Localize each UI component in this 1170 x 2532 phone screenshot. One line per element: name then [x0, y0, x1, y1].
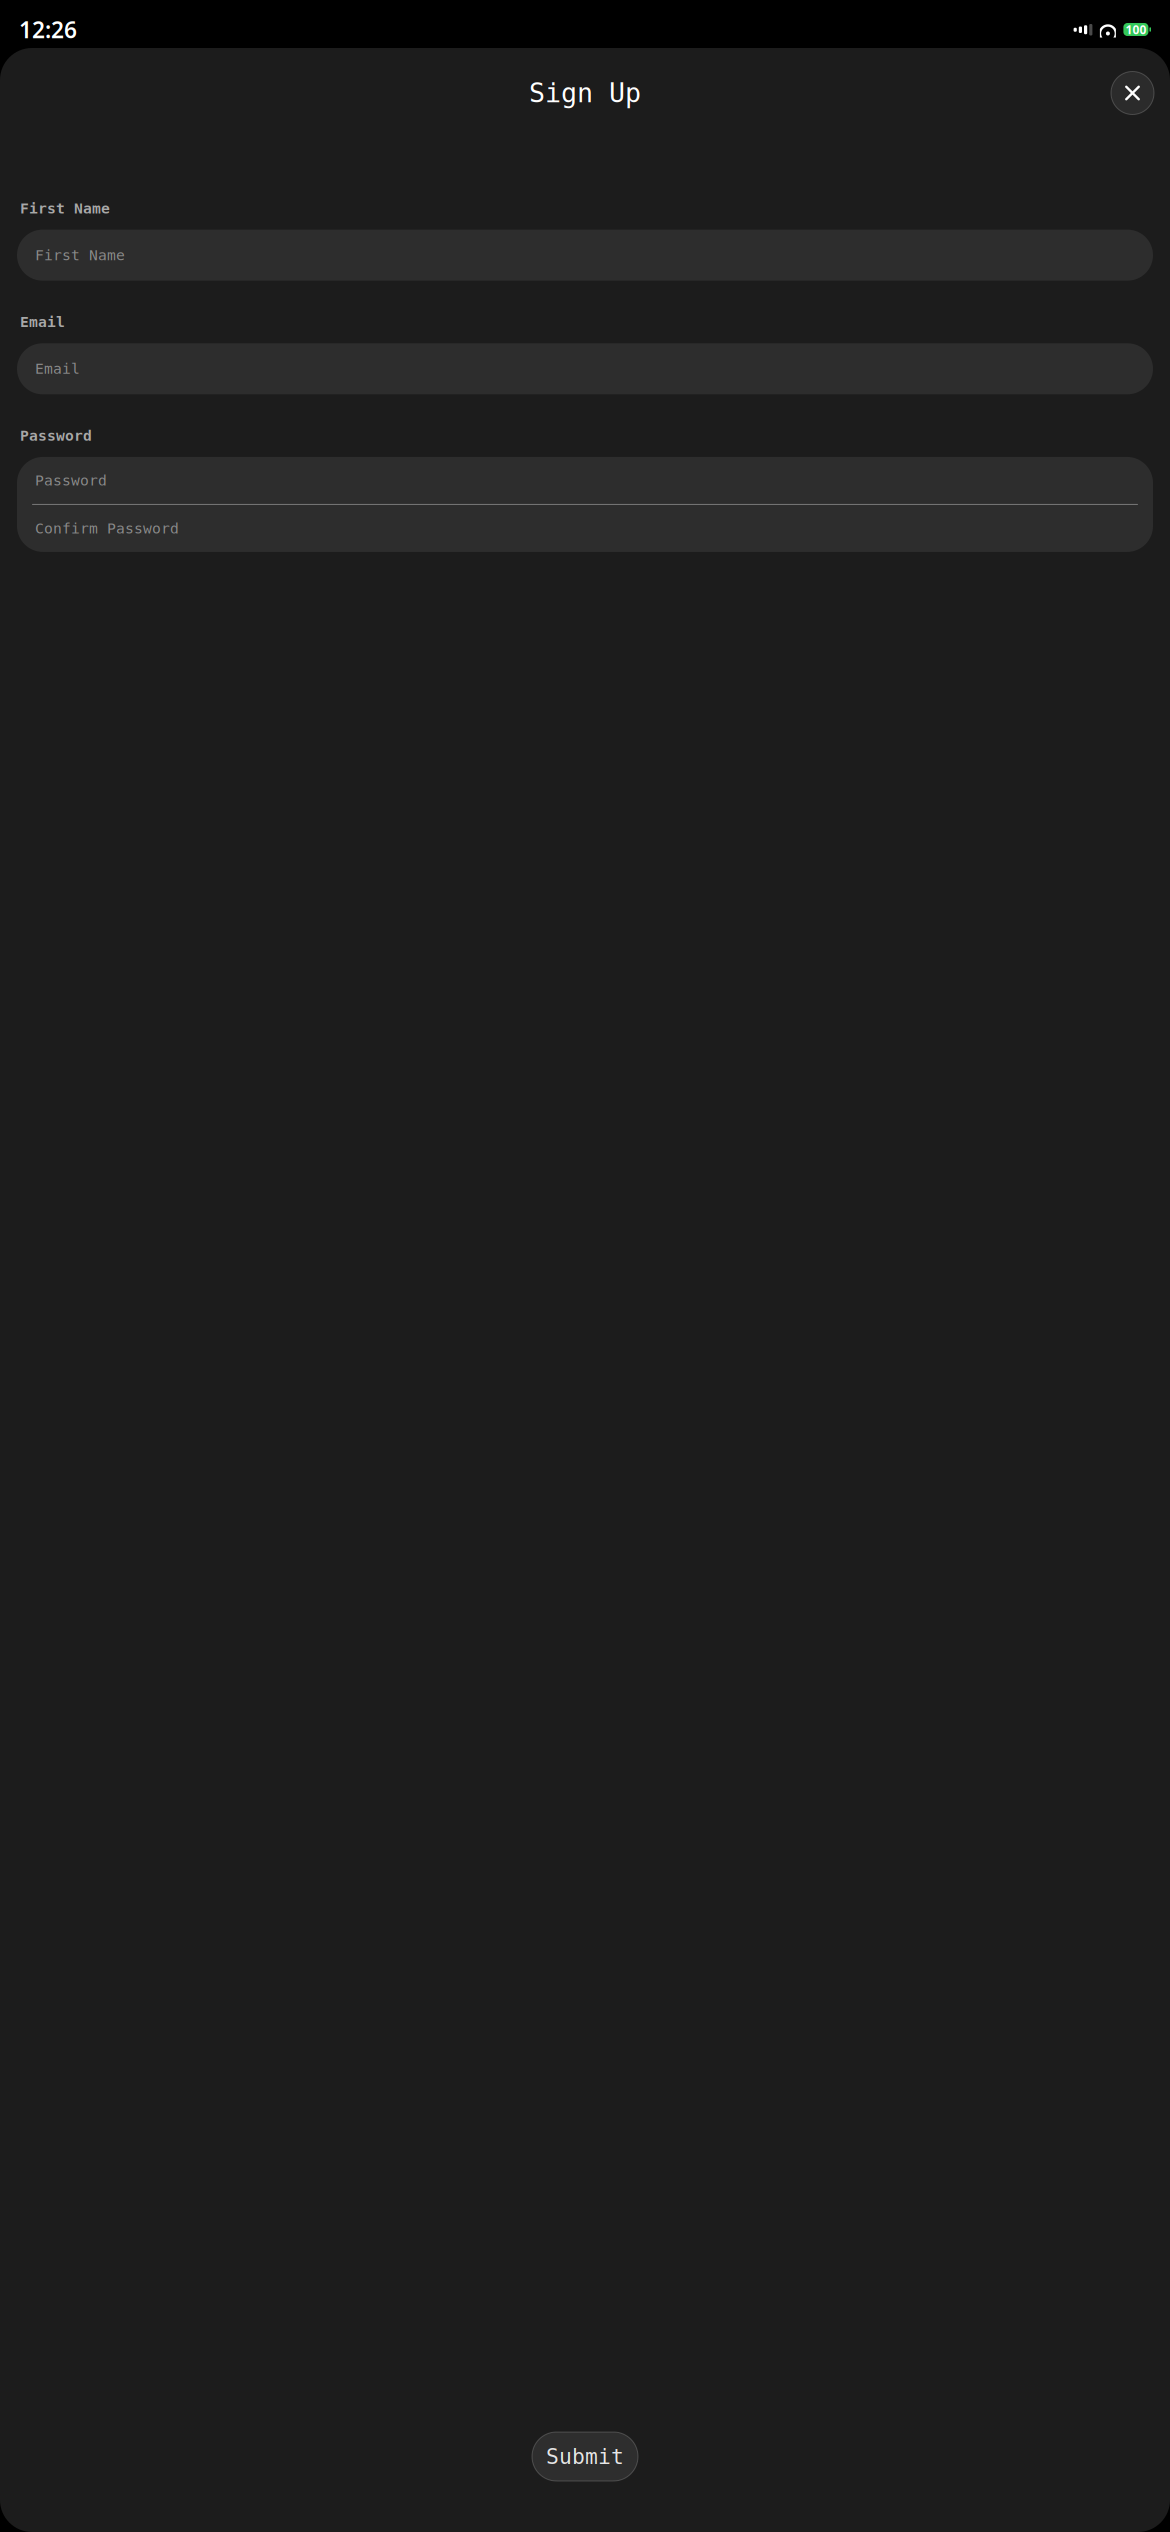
button[interactable]: Submit	[532, 2432, 638, 2481]
button[interactable]: Close	[1111, 71, 1154, 114]
button[interactable]: First Name	[17, 230, 1153, 281]
button[interactable]: Confirm Password	[17, 505, 1153, 552]
staticText: 12:26	[19, 14, 77, 44]
staticText: Confirm Password	[35, 520, 179, 537]
staticText: Password	[20, 427, 92, 444]
staticText: First Name	[20, 200, 110, 217]
button[interactable]: Email	[17, 343, 1153, 394]
button[interactable]: Password	[17, 457, 1153, 504]
staticText: 100	[1125, 21, 1146, 37]
staticText: First Name	[35, 247, 125, 263]
staticText: Email	[35, 360, 80, 377]
staticText: Sign Up	[529, 78, 641, 108]
staticText: Password	[35, 472, 107, 489]
staticText: Email	[20, 314, 65, 330]
staticText: Submit	[546, 2444, 624, 2469]
